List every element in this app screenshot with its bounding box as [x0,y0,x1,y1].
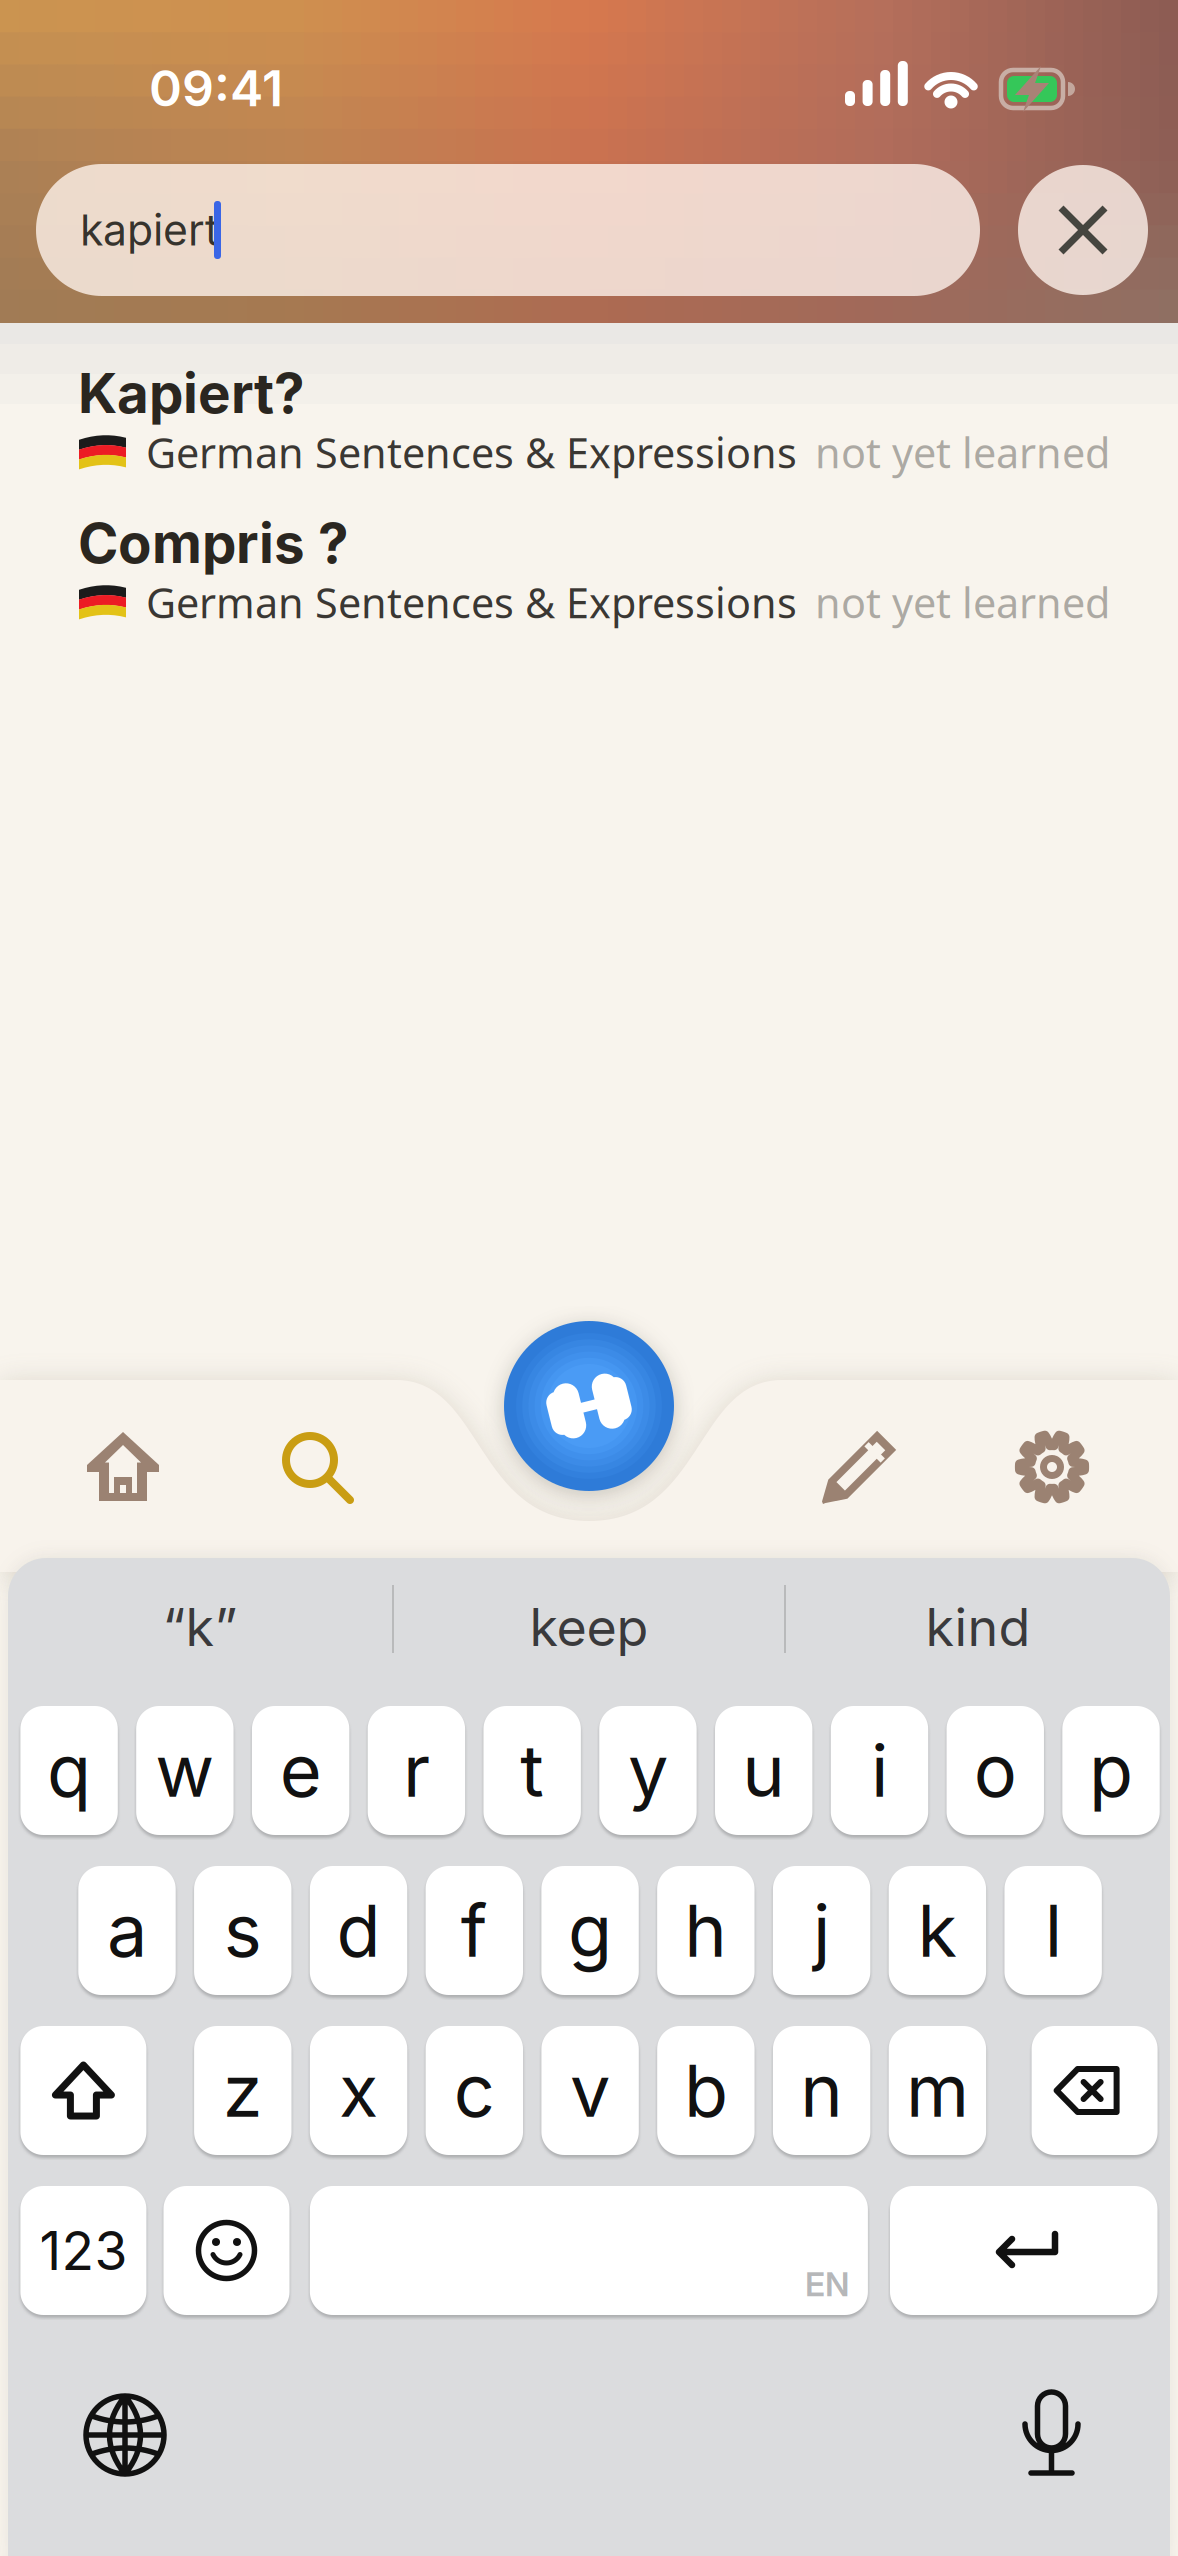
staticText: v [570,2047,610,2134]
button[interactable]: kind [786,1589,1170,1665]
button[interactable]: “k” [8,1589,392,1665]
staticText: b [684,2047,728,2134]
button[interactable]: p [1062,1706,1160,1835]
staticText: s [224,1887,262,1974]
staticText: u [742,1727,785,1814]
button[interactable]: keep [396,1589,782,1665]
button[interactable]: v [541,2026,639,2155]
button[interactable]: Kapiert? [78,360,1158,484]
button[interactable]: f [426,1866,523,1995]
button[interactable]: e [252,1706,349,1835]
staticText: not yet learned [815,574,1110,630]
button[interactable]: Clear search [1018,165,1148,295]
staticText: not yet learned [815,424,1110,480]
staticText: g [568,1887,612,1974]
button[interactable]: Delete [1032,2026,1158,2155]
button[interactable]: i [831,1706,928,1835]
button[interactable]: kapiert [36,164,980,296]
staticText: i [871,1727,888,1814]
staticText: German Sentences & Expressions [146,574,797,630]
button[interactable]: Shift [20,2026,146,2155]
staticText: j [813,1887,830,1974]
staticText: a [107,1887,147,1974]
button[interactable]: z [194,2026,291,2155]
staticText: h [684,1887,727,1974]
button[interactable]: s [194,1866,291,1995]
button[interactable]: Search [263,1412,373,1522]
staticText: z [223,2047,263,2134]
staticText: p [1089,1727,1133,1814]
button[interactable]: k [889,1866,986,1995]
button[interactable]: b [657,2026,755,2155]
staticText: f [461,1887,488,1974]
staticText: r [403,1727,430,1814]
button[interactable]: t [483,1706,581,1835]
staticText: q [47,1727,91,1814]
button[interactable]: x [310,2026,407,2155]
staticText: w [155,1727,214,1814]
staticText: o [974,1727,1017,1814]
button[interactable]: Dictate [991,2372,1111,2492]
button[interactable]: a [78,1866,176,1995]
button[interactable]: o [947,1706,1044,1835]
staticText: m [906,2047,969,2134]
button[interactable]: Home [68,1413,178,1523]
staticText: “k” [162,1595,237,1658]
button[interactable]: Train [504,1321,674,1491]
button[interactable]: w [136,1706,234,1835]
button[interactable]: Practice writing [802,1412,912,1522]
staticText: German Sentences & Expressions [146,424,797,480]
staticText: 123 [39,2218,127,2283]
button[interactable]: Compris ? [78,510,1158,634]
staticText: x [339,2047,378,2134]
button[interactable]: n [773,2026,870,2155]
button[interactable]: m [889,2026,986,2155]
button[interactable]: Emoji [163,2186,289,2315]
staticText: kapiert [80,204,219,256]
staticText: c [454,2047,495,2134]
button[interactable]: d [310,1866,407,1995]
staticText: Kapiert? [78,360,305,426]
staticText: kind [925,1595,1030,1658]
button[interactable]: Space [310,2186,868,2315]
button[interactable]: g [541,1866,639,1995]
staticText: l [1045,1887,1062,1974]
staticText: Compris ? [78,510,349,576]
button[interactable]: h [657,1866,754,1995]
staticText: EN [805,2264,850,2304]
button[interactable]: u [715,1706,812,1835]
staticText: d [336,1887,380,1974]
button[interactable]: c [426,2026,523,2155]
staticText: 09:41 [149,58,283,118]
button[interactable]: Next keyboard [65,2375,185,2495]
button[interactable]: 123 [20,2186,146,2315]
button[interactable]: l [1004,1866,1102,1995]
staticText: y [628,1727,668,1814]
button[interactable]: y [599,1706,697,1835]
button[interactable]: j [773,1866,870,1995]
button[interactable]: Settings [997,1412,1107,1522]
staticText: n [800,2047,843,2134]
button[interactable]: Return [890,2186,1157,2315]
staticText: t [520,1727,544,1814]
staticText: e [280,1727,322,1814]
staticText: k [917,1887,957,1974]
button[interactable]: r [368,1706,465,1835]
staticText: keep [529,1595,648,1658]
button[interactable]: q [20,1706,118,1835]
